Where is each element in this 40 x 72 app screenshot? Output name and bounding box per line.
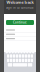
button[interactable]: Continue [6,20,34,25]
staticText: Continue [13,21,27,24]
staticText: Sign in to continue [6,6,34,9]
staticText: Welcome back [6,0,33,5]
